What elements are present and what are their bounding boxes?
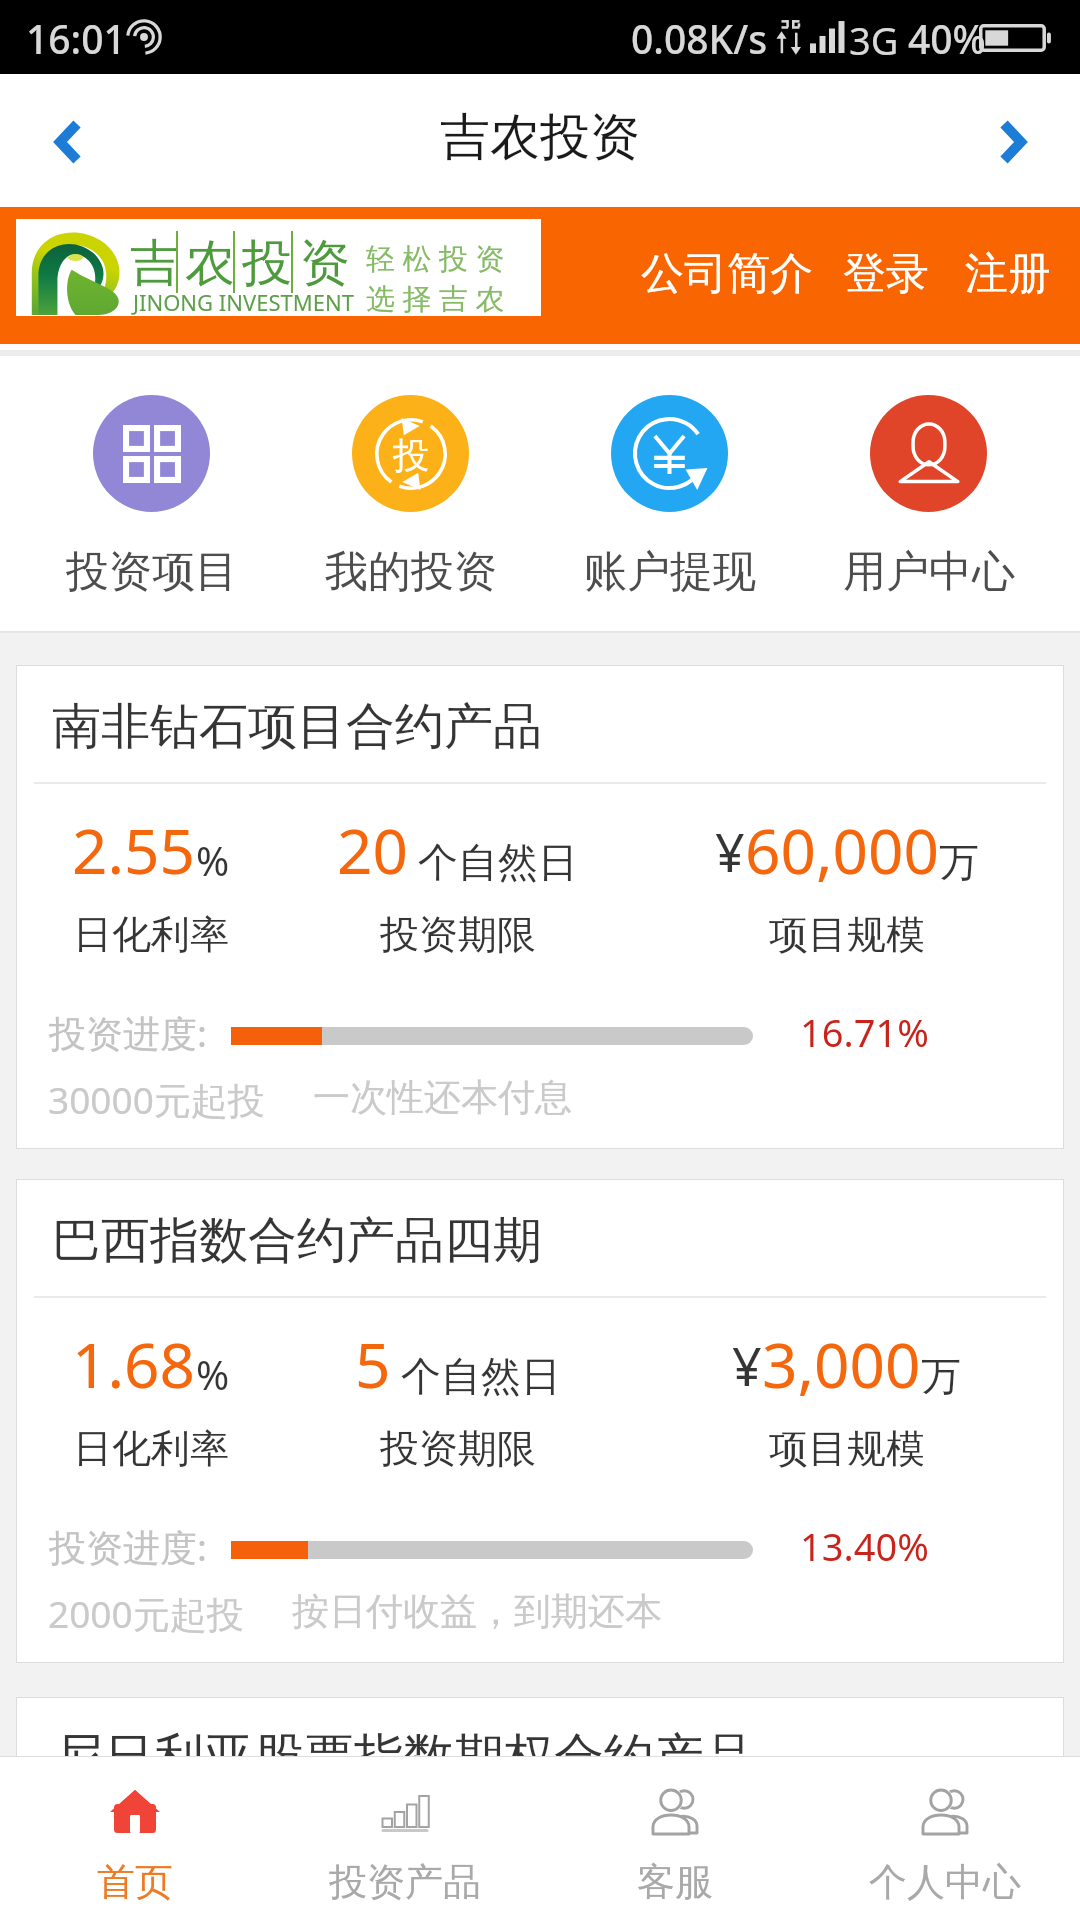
- button[interactable]: 公司简介: [641, 247, 813, 301]
- staticText: 资: [300, 232, 350, 295]
- staticText: 注册: [965, 247, 1051, 301]
- staticText: 项目规模: [769, 910, 925, 959]
- staticText: 吉农投资: [440, 106, 640, 169]
- staticText: 南非钻石项目合约产品: [52, 696, 542, 758]
- staticText: 3,000: [762, 1322, 921, 1406]
- button[interactable]: Forward: [948, 74, 1080, 207]
- staticText: 一次性还本付息: [313, 1074, 572, 1121]
- staticText: 日化利率: [73, 910, 229, 959]
- staticText: 个自然日: [401, 1351, 561, 1401]
- staticText: 60,000: [745, 808, 939, 892]
- staticText: 投资进度:: [49, 1521, 207, 1572]
- staticText: 用户中心: [843, 545, 1015, 599]
- staticText: 尼日利亚股票指数期权合约产品: [54, 1726, 754, 1789]
- staticText: 投: [393, 433, 429, 478]
- staticText: 按日付收益，到期还本: [292, 1588, 662, 1635]
- button[interactable]: Back: [0, 74, 132, 207]
- staticText: 轻 松 投 资: [366, 238, 505, 278]
- button[interactable]: 投资产品: [270, 1757, 540, 1920]
- button[interactable]: 账户提现: [540, 344, 799, 631]
- staticText: 0.08K/s: [631, 12, 768, 65]
- staticText: ¥: [732, 1330, 762, 1401]
- staticText: 投资产品: [329, 1858, 481, 1906]
- staticText: 30000元起投: [48, 1074, 265, 1125]
- staticText: 个自然日: [418, 837, 578, 887]
- button[interactable]: 登录: [843, 247, 929, 301]
- staticText: 万: [921, 1351, 961, 1401]
- staticText: 客服: [637, 1858, 713, 1906]
- staticText: 投资项目: [66, 545, 238, 599]
- staticText: 16.71%: [800, 1006, 929, 1058]
- staticText: ¥: [715, 816, 745, 887]
- button[interactable]: 投: [281, 344, 540, 631]
- staticText: 13.40%: [800, 1520, 929, 1572]
- button[interactable]: 注册: [965, 247, 1051, 301]
- staticText: 我的投资: [325, 545, 497, 599]
- staticText: 40%: [908, 12, 986, 65]
- staticText: 20: [337, 808, 408, 892]
- staticText: 投资期限: [380, 1424, 536, 1473]
- button[interactable]: 首页: [0, 1757, 270, 1920]
- staticText: 首页: [97, 1858, 173, 1906]
- button[interactable]: 客服: [540, 1757, 810, 1920]
- staticText: 3G: [849, 14, 899, 66]
- button[interactable]: 用户中心: [799, 344, 1058, 631]
- staticText: 2000元起投: [48, 1588, 244, 1639]
- staticText: 账户提现: [584, 545, 756, 599]
- button[interactable]: 个人中心: [810, 1757, 1080, 1920]
- staticText: 农: [185, 232, 235, 295]
- button[interactable]: 投资项目: [22, 344, 281, 631]
- staticText: 巴西指数合约产品四期: [52, 1210, 542, 1272]
- staticText: 项目规模: [769, 1424, 925, 1473]
- staticText: %: [196, 833, 230, 887]
- staticText: 投: [242, 232, 292, 295]
- staticText: JINONG INVESTMENT: [133, 287, 354, 317]
- button[interactable]: 南非钻石项目合约产品: [17, 666, 1063, 1148]
- staticText: 公司简介: [641, 247, 813, 301]
- staticText: 万: [939, 837, 979, 887]
- staticText: 选 择 吉 农: [366, 278, 505, 318]
- staticText: 5: [355, 1322, 391, 1406]
- staticText: 日化利率: [73, 1424, 229, 1473]
- staticText: 投资进度:: [49, 1007, 207, 1058]
- staticText: 个人中心: [869, 1858, 1021, 1906]
- staticText: 投资期限: [380, 910, 536, 959]
- staticText: 吉: [130, 232, 180, 295]
- staticText: 16:01: [26, 12, 126, 65]
- staticText: 1.68: [72, 1322, 196, 1406]
- staticText: 2.55: [72, 808, 196, 892]
- button[interactable]: 吉农投资 JINONG INVESTMENT: [16, 219, 541, 316]
- staticText: 登录: [843, 247, 929, 301]
- button[interactable]: 尼日利亚股票指数期权合约产品: [17, 1698, 1063, 1919]
- button[interactable]: 巴西指数合约产品四期: [17, 1180, 1063, 1662]
- staticText: %: [196, 1347, 230, 1401]
